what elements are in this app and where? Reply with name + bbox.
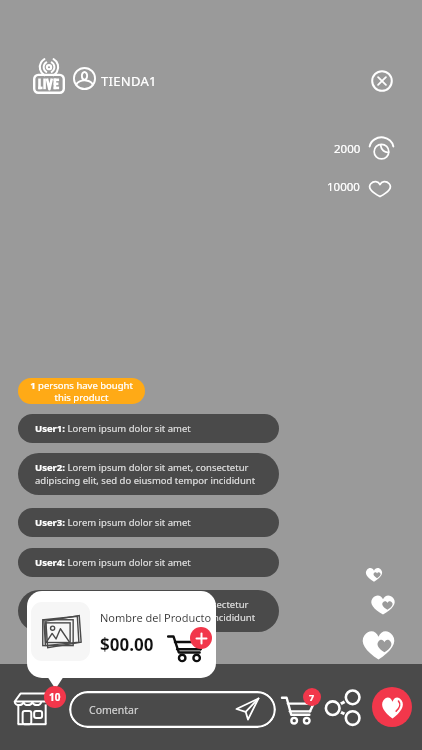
button[interactable]: User4: Lorem ipsum dolor sit amet [18, 548, 279, 577]
button[interactable]: Store [14, 690, 50, 726]
staticText: User2: Lorem ipsum dolor sit amet, conse… [35, 461, 256, 487]
staticText: User3: Lorem ipsum dolor sit amet [35, 516, 191, 529]
button[interactable]: Close [371, 70, 393, 92]
button[interactable]: User5: Lorem ipsum dolor sit amet, conse… [18, 590, 279, 632]
button[interactable]: Viewers 2000 [334, 138, 393, 160]
button[interactable]: Cart [281, 694, 314, 725]
staticText: 10000 [327, 179, 360, 195]
staticText: 2000 [334, 141, 361, 157]
staticText: $00.00 [100, 633, 154, 656]
staticText: 10 [49, 690, 61, 704]
button[interactable]: Comentar [69, 691, 276, 728]
button[interactable]: Add to cart [167, 633, 205, 662]
staticText: 7 [309, 691, 315, 703]
button[interactable]: User3: Lorem ipsum dolor sit amet [18, 508, 279, 537]
button[interactable]: 1 persons have bought this product [18, 378, 145, 404]
staticText: Nombre del Producto [100, 610, 212, 625]
button[interactable]: Live [33, 58, 65, 94]
button[interactable]: Send [236, 698, 259, 720]
button[interactable]: Share [325, 690, 360, 725]
button[interactable]: Likes 10000 [327, 177, 392, 196]
button[interactable]: User1: Lorem ipsum dolor sit amet [18, 414, 279, 443]
staticText: TIENDA1 [101, 72, 157, 90]
staticText: User4: Lorem ipsum dolor sit amet [35, 556, 191, 569]
button[interactable]: User2: Lorem ipsum dolor sit amet, conse… [18, 453, 279, 495]
staticText: 1 persons have bought this product [30, 379, 133, 403]
button[interactable]: Store profile [73, 67, 96, 90]
button[interactable]: Like [372, 687, 412, 727]
staticText: User1: Lorem ipsum dolor sit amet [35, 422, 191, 435]
staticText: User5: Lorem ipsum dolor sit amet, conse… [35, 598, 256, 624]
staticText: Comentar [89, 703, 139, 717]
button[interactable]: Nombre del Producto [27, 591, 216, 678]
